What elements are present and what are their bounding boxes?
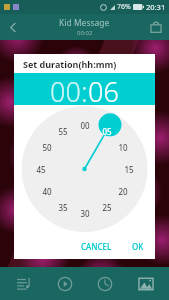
- staticText: CANCEL: [81, 241, 112, 252]
- staticText: Set duration(hh:mm): [23, 58, 117, 70]
- button[interactable]: 05: [97, 121, 117, 141]
- button[interactable]: Shop: [143, 14, 169, 40]
- button[interactable]: 55: [53, 121, 73, 141]
- button[interactable]: Timer: [88, 267, 121, 300]
- button[interactable]: 30: [75, 203, 95, 223]
- button[interactable]: Play: [48, 267, 81, 300]
- button[interactable]: OK: [126, 238, 150, 255]
- button[interactable]: 20: [113, 181, 133, 201]
- staticText: 25: [102, 202, 112, 213]
- button[interactable]: 40: [37, 181, 57, 201]
- staticText: 35: [58, 202, 68, 213]
- staticText: Kid Message: [59, 17, 110, 29]
- staticText: 10: [118, 142, 128, 153]
- staticText: 45: [36, 164, 46, 175]
- button[interactable]: Back: [0, 14, 26, 40]
- button[interactable]: 15: [119, 159, 139, 179]
- staticText: 05: [102, 126, 112, 137]
- button[interactable]: 45: [31, 159, 51, 179]
- staticText: 20: [118, 186, 128, 197]
- button[interactable]: 50: [37, 137, 57, 157]
- staticText: 00:02: [77, 29, 93, 37]
- button[interactable]: 35: [53, 197, 73, 217]
- button[interactable]: 00: [75, 115, 95, 135]
- staticText: 50: [42, 142, 52, 153]
- staticText: :: [81, 73, 88, 105]
- button[interactable]: Playlist: [7, 267, 40, 300]
- staticText: 55: [58, 126, 68, 137]
- staticText: 76%: [117, 2, 131, 12]
- staticText: 40: [42, 186, 52, 197]
- staticText: 30: [80, 208, 90, 219]
- button[interactable]: 00: [50, 73, 81, 105]
- button[interactable]: 25: [97, 197, 117, 217]
- button[interactable]: 10: [113, 137, 133, 157]
- staticText: 20:31: [146, 2, 166, 12]
- button[interactable]: CANCEL: [75, 238, 118, 255]
- button[interactable]: 06: [88, 73, 119, 105]
- staticText: 00: [80, 120, 90, 131]
- button[interactable]: Gallery: [129, 267, 162, 300]
- staticText: OK: [132, 241, 144, 252]
- staticText: 15: [124, 164, 134, 175]
